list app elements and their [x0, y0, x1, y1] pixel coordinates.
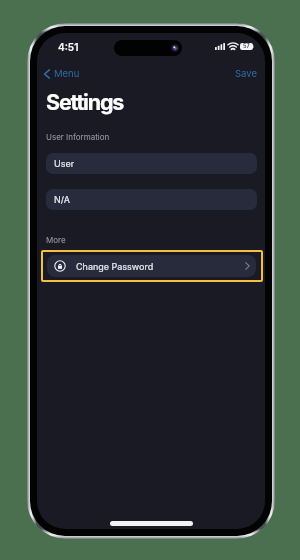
staticText: 57: [243, 43, 250, 50]
button[interactable]: Save: [229, 64, 263, 83]
button[interactable]: N/A: [46, 189, 257, 210]
staticText: N/A: [54, 194, 71, 205]
staticText: User Information: [46, 132, 110, 142]
staticText: Save: [235, 68, 257, 79]
staticText: More: [46, 235, 66, 245]
button[interactable]: User: [46, 153, 257, 174]
staticText: Settings: [46, 89, 124, 115]
button[interactable]: Change Password: [47, 255, 256, 277]
staticText: User: [54, 158, 75, 169]
staticText: 4:51: [58, 41, 79, 53]
staticText: Change Password: [76, 261, 154, 272]
button[interactable]: Menu: [40, 64, 84, 83]
staticText: Menu: [54, 68, 80, 79]
